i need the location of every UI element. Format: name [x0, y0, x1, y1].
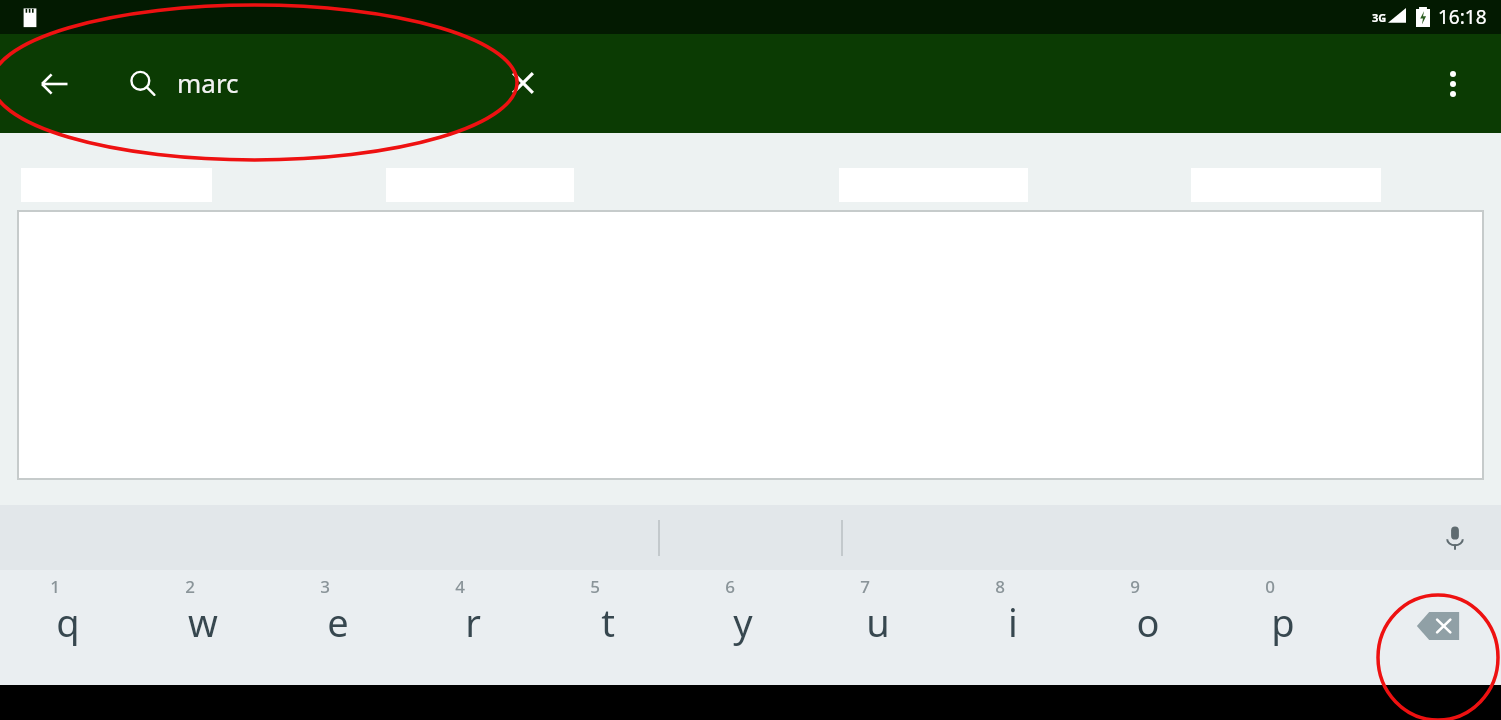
- button[interactable]: 0: [1223, 570, 1343, 685]
- staticText: marc: [177, 65, 239, 100]
- staticText: 1: [50, 575, 60, 598]
- button[interactable]: 1: [8, 570, 128, 685]
- button[interactable]: 2: [143, 570, 263, 685]
- button[interactable]: [17, 210, 1484, 480]
- staticText: p: [1223, 596, 1343, 648]
- staticText: 4: [455, 575, 465, 598]
- button[interactable]: More options: [1427, 58, 1479, 110]
- staticText: i: [953, 596, 1073, 648]
- staticText: 9: [1130, 575, 1140, 598]
- staticText: 0: [1265, 575, 1275, 598]
- staticText: 16:18: [1438, 4, 1487, 30]
- button[interactable]: 8: [953, 570, 1073, 685]
- staticText: 3: [320, 575, 330, 598]
- staticText: u: [818, 596, 938, 648]
- staticText: 5: [590, 575, 600, 598]
- staticText: o: [1088, 596, 1208, 648]
- button[interactable]: 7: [818, 570, 938, 685]
- button[interactable]: 5: [548, 570, 668, 685]
- button[interactable]: Clear query: [498, 58, 548, 108]
- staticText: e: [278, 596, 398, 648]
- staticText: w: [143, 596, 263, 648]
- staticText: r: [413, 596, 533, 648]
- staticText: q: [8, 596, 128, 648]
- staticText: 3G: [1372, 10, 1387, 25]
- button[interactable]: Backspace: [1375, 570, 1501, 685]
- staticText: 6: [725, 575, 735, 598]
- staticText: y: [683, 596, 803, 648]
- button[interactable]: 6: [683, 570, 803, 685]
- staticText: 8: [995, 575, 1005, 598]
- button[interactable]: 9: [1088, 570, 1208, 685]
- staticText: 7: [860, 575, 870, 598]
- button[interactable]: 3: [278, 570, 398, 685]
- staticText: 2: [185, 575, 195, 598]
- staticText: t: [548, 596, 668, 648]
- button[interactable]: 4: [413, 570, 533, 685]
- button[interactable]: Navigate up: [28, 58, 80, 110]
- button[interactable]: Voice input: [1431, 514, 1479, 562]
